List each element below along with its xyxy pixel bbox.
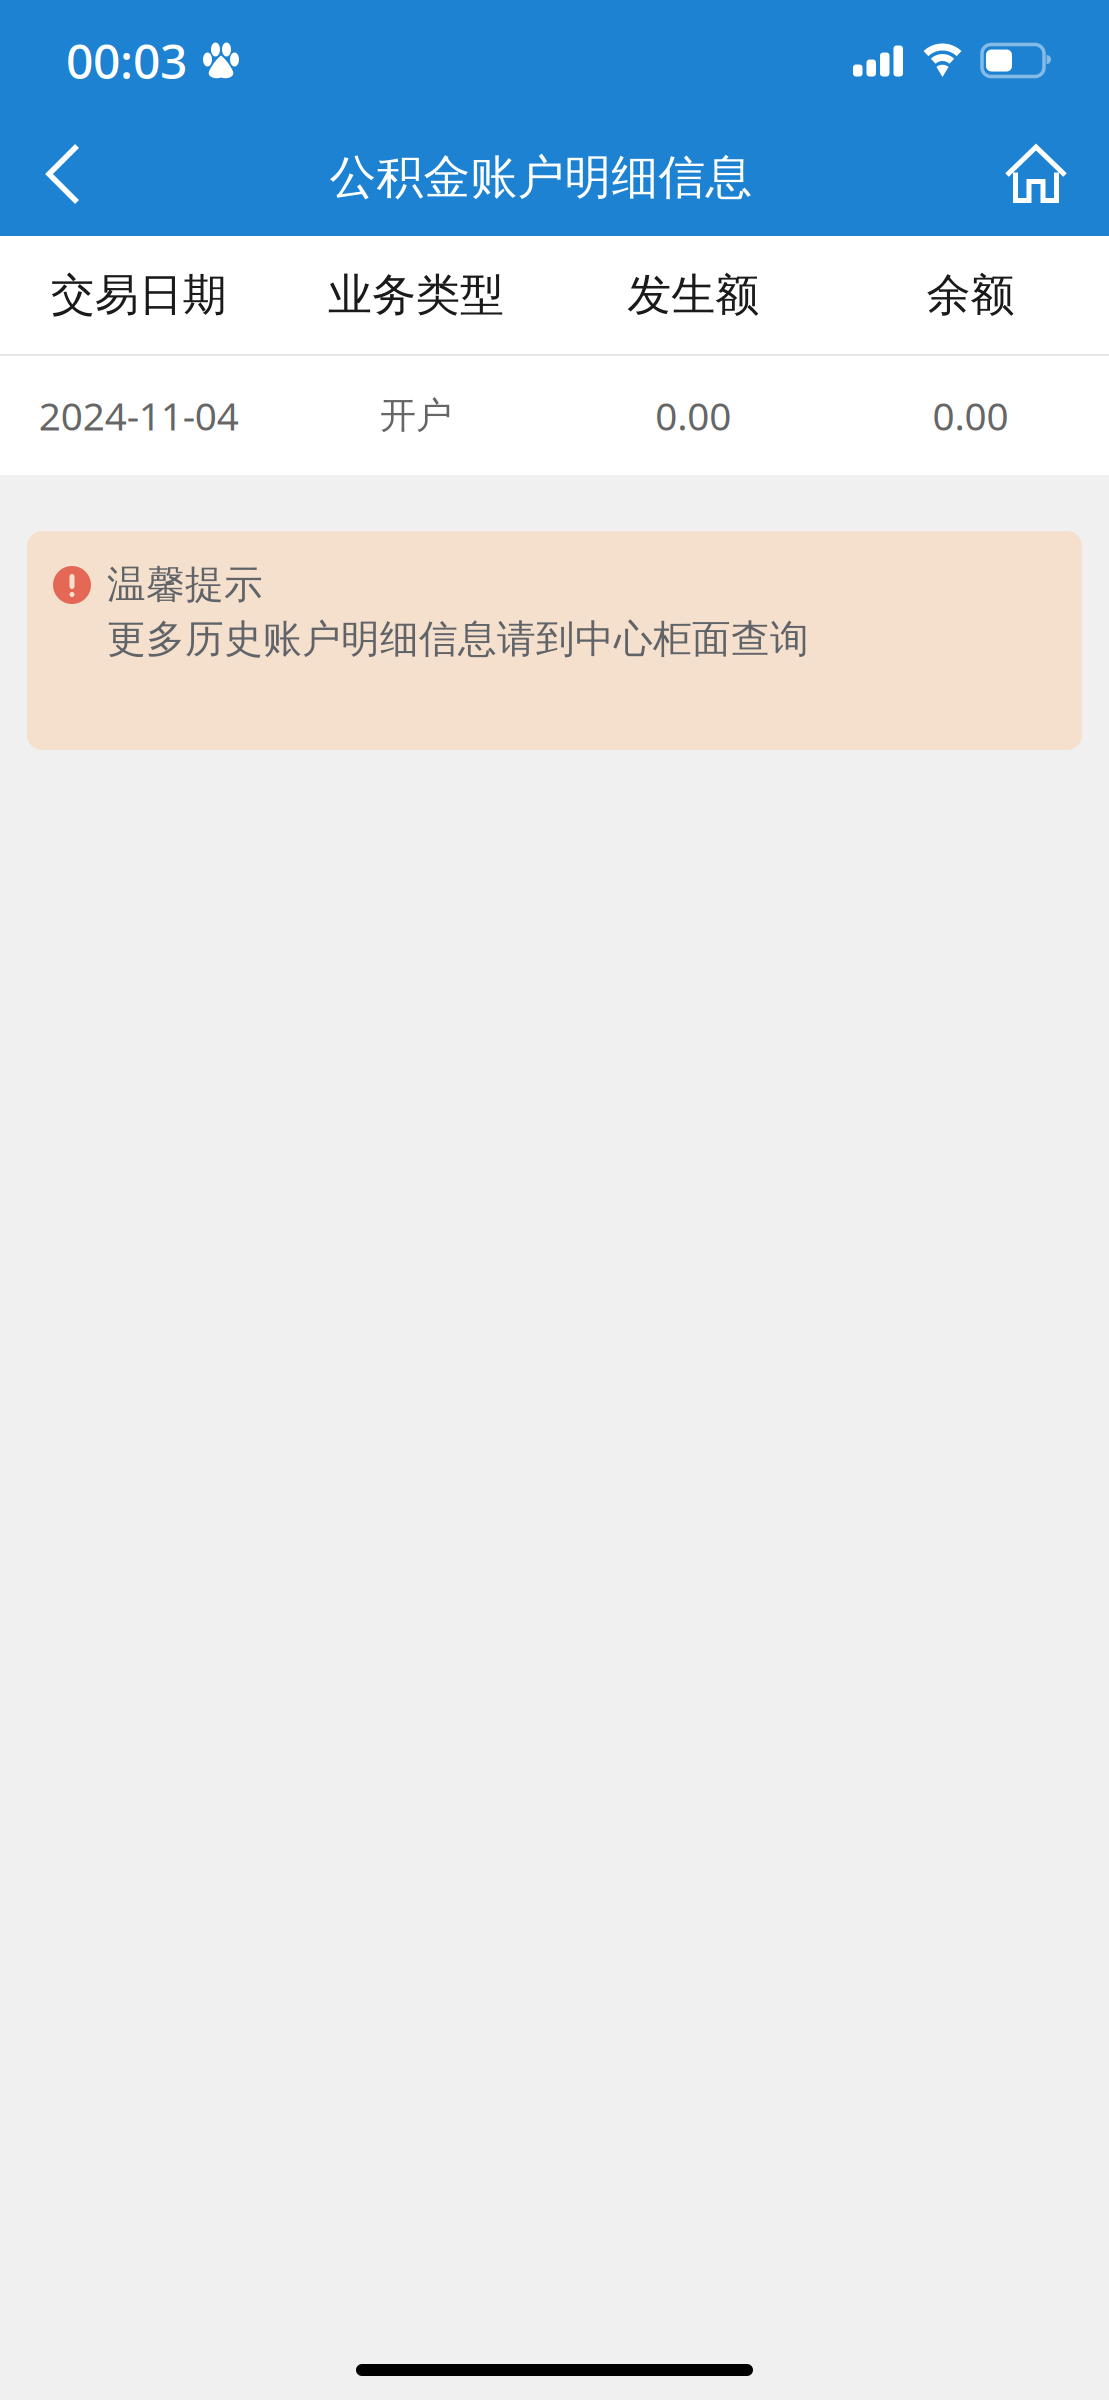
staticText: 公积金账户明细信息 bbox=[329, 149, 752, 206]
staticText: 2024-11-04 bbox=[39, 390, 239, 441]
staticText: 00:03 bbox=[66, 29, 187, 92]
button[interactable]: Home bbox=[984, 112, 1088, 236]
button[interactable]: Back bbox=[8, 112, 118, 236]
staticText: 温馨提示 bbox=[107, 561, 263, 608]
staticText: 0.00 bbox=[655, 390, 731, 441]
staticText: 交易日期 bbox=[51, 268, 227, 322]
staticText: 开户 bbox=[380, 393, 452, 438]
staticText: 更多历史账户明细信息请到中心柜面查询 bbox=[107, 615, 809, 663]
staticText: 发生额 bbox=[627, 268, 759, 322]
button[interactable]: 2024-11-04 bbox=[0, 356, 1109, 475]
staticText: 0.00 bbox=[932, 390, 1008, 441]
staticText: 业务类型 bbox=[328, 268, 504, 322]
staticText: 余额 bbox=[926, 268, 1014, 322]
